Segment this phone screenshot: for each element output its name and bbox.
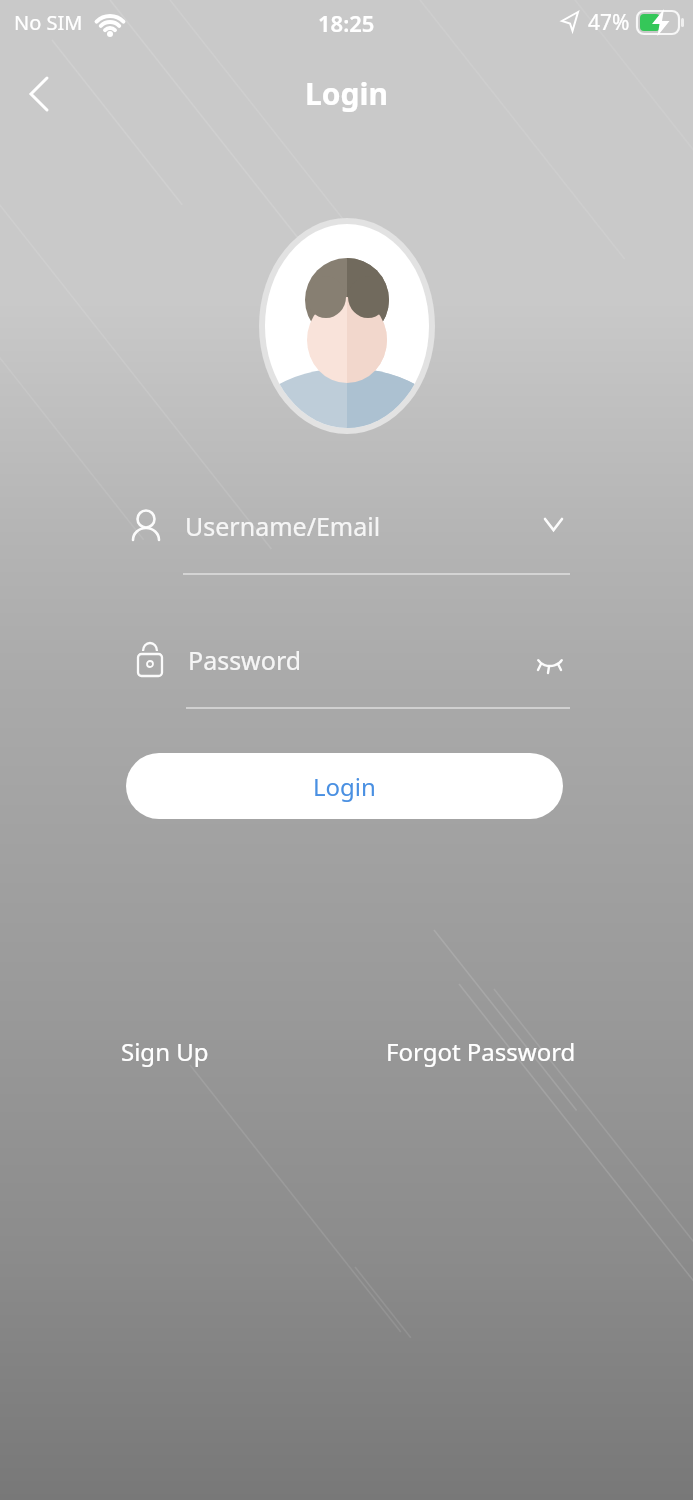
staticText: Login [305, 73, 388, 114]
button[interactable]: Sign Up [95, 1028, 235, 1074]
button[interactable]: Forgot Password [356, 1028, 606, 1074]
staticText: Login [313, 770, 376, 803]
staticText: No SIM [14, 9, 83, 36]
staticText: Forgot Password [386, 1035, 576, 1068]
button[interactable]: Login [126, 753, 563, 819]
staticText: Password [188, 643, 302, 677]
button[interactable] [14, 68, 66, 120]
staticText: Username/Email [185, 509, 381, 543]
staticText: Sign Up [121, 1035, 209, 1068]
button[interactable] [120, 492, 693, 562]
staticText: 18:25 [318, 8, 375, 36]
button[interactable] [120, 630, 693, 700]
staticText: 47% [588, 8, 630, 36]
